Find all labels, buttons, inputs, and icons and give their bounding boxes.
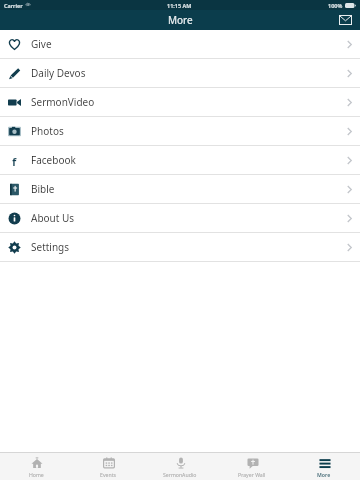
staticText: Settings <box>31 240 70 254</box>
button[interactable]: f <box>0 146 360 174</box>
staticText: More <box>168 13 193 27</box>
button[interactable]: Give <box>0 30 360 58</box>
staticText: f <box>12 154 17 167</box>
staticText: Prayer Wall <box>238 471 266 478</box>
staticText: Facebook <box>31 153 76 167</box>
staticText: More <box>317 471 331 478</box>
button[interactable]: Home <box>0 453 72 480</box>
button[interactable]: Daily Devos <box>0 59 360 87</box>
button[interactable]: Settings <box>0 233 360 261</box>
staticText: About Us <box>31 211 75 225</box>
staticText: Bible <box>31 182 55 196</box>
button[interactable]: Events <box>72 453 144 480</box>
staticText: SermonAudio <box>163 471 197 478</box>
button[interactable]: More <box>288 453 360 480</box>
button[interactable]: Bible <box>0 175 360 203</box>
staticText: Events <box>100 471 117 478</box>
staticText: Give <box>31 37 52 51</box>
button[interactable]: Photos <box>0 117 360 145</box>
staticText: SermonVideo <box>31 95 95 109</box>
staticText: 100% <box>328 2 343 9</box>
staticText: Home <box>29 471 44 478</box>
staticText: Carrier <box>4 2 23 9</box>
staticText: 11:15 AM <box>167 2 192 9</box>
button[interactable]: Prayer Wall <box>216 453 288 480</box>
button[interactable]: SermonVideo <box>0 88 360 116</box>
staticText: Daily Devos <box>31 66 86 80</box>
button[interactable]: About Us <box>0 204 360 232</box>
staticText: Photos <box>31 124 64 138</box>
button[interactable]: Messages <box>336 11 354 29</box>
button[interactable]: SermonAudio <box>144 453 216 480</box>
